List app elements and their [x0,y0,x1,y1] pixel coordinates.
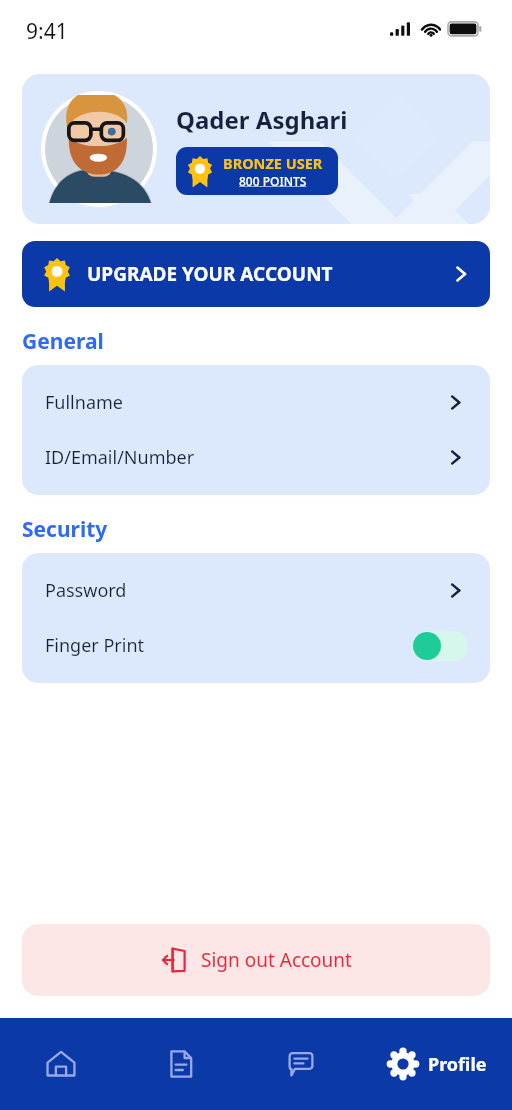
button[interactable]: Home [0,1018,121,1110]
button[interactable]: Finger Print toggle [412,631,468,661]
staticText: Fullname [45,390,123,415]
staticText: BRONZE USER [223,153,323,173]
staticText: 800 POINTS [239,173,307,189]
staticText: Password [45,578,127,603]
staticText: General [22,327,104,356]
staticText: Profile [428,1052,487,1077]
button[interactable]: UPGRADE YOUR ACCOUNT [22,241,490,307]
staticText: Security [22,515,108,544]
staticText: Finger Print [45,633,145,658]
button[interactable]: Profile [361,1018,512,1110]
staticText: ID/Email/Number [45,445,195,470]
button[interactable]: Sign out Account [22,924,490,996]
staticText: UPGRADE YOUR ACCOUNT [87,261,333,287]
button[interactable]: Qader Asghari [22,74,490,224]
staticText: 9:41 [26,17,68,46]
button[interactable]: Finger Print [22,618,490,673]
staticText: Sign out Account [201,947,352,973]
button[interactable]: Fullname [22,375,490,430]
staticText: Qader Asghari [176,103,348,136]
button[interactable]: BRONZE USER [176,147,338,195]
button[interactable]: ID/Email/Number [22,430,490,485]
button[interactable]: Password [22,563,490,618]
button[interactable]: Documents [121,1018,241,1110]
button[interactable]: Messages [241,1018,361,1110]
